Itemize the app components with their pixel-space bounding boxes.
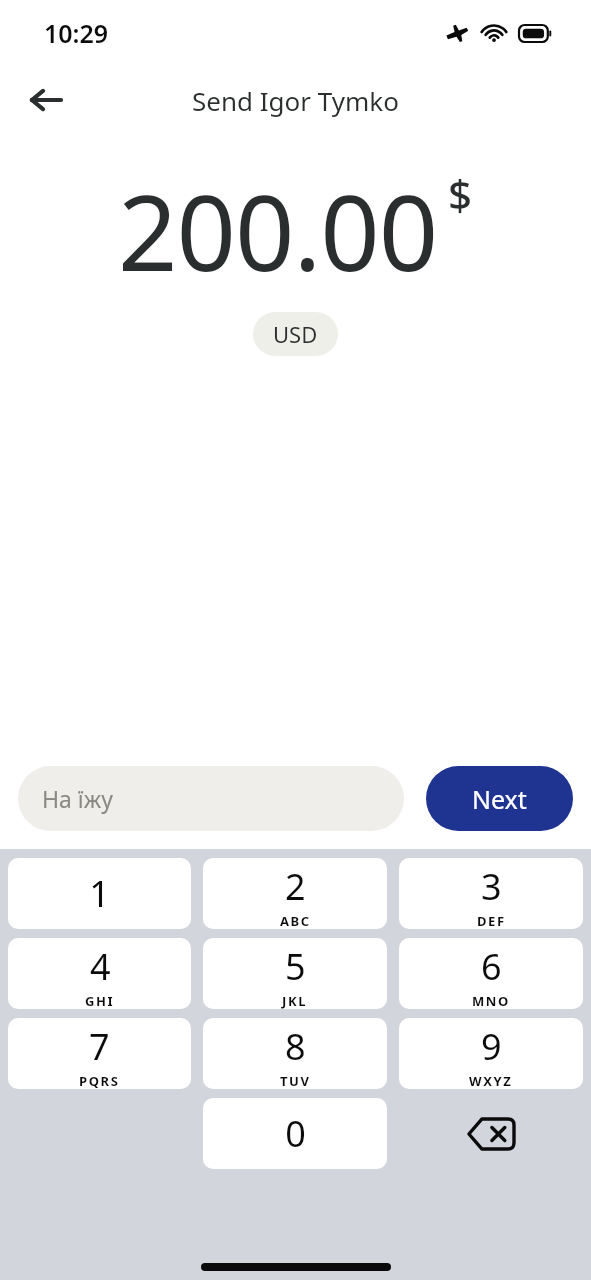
staticText: 5 [285,942,306,991]
staticText: ABC [280,912,311,929]
button[interactable]: 8 [203,1018,387,1089]
staticText: На їжу [42,783,113,814]
button[interactable]: 9 [399,1018,583,1089]
staticText: 3 [481,862,502,911]
button[interactable]: 6 [399,938,583,1009]
staticText: PQRS [79,1072,120,1089]
staticText: 0 [285,1109,306,1158]
staticText: WXYZ [469,1072,513,1089]
staticText: DEF [477,912,506,929]
staticText: 6 [481,942,502,991]
button[interactable]: 2 [203,858,387,929]
button[interactable]: 7 [8,1018,191,1089]
staticText: 9 [481,1022,502,1071]
button[interactable]: 5 [203,938,387,1009]
staticText: 1 [89,869,110,918]
staticText: TUV [280,1072,311,1089]
button[interactable]: 4 [8,938,191,1009]
staticText: USD [273,319,318,349]
button[interactable]: Back [22,76,70,124]
staticText: 4 [90,942,111,991]
staticText: 200.00 [118,160,438,302]
staticText: 2 [285,862,306,911]
button[interactable]: 0 [203,1098,387,1169]
staticText: 7 [89,1022,110,1071]
staticText: MNO [472,992,510,1009]
button[interactable]: Next [426,766,573,831]
staticText: Next [472,782,527,816]
staticText: 10:29 [44,16,109,50]
button[interactable]: USD [253,312,338,356]
staticText: 8 [285,1022,306,1071]
staticText: JKL [282,992,308,1009]
staticText: Send Igor Tymko [192,83,399,118]
button[interactable]: 3 [399,858,583,929]
button[interactable]: На їжу [18,766,404,831]
button[interactable]: Backspace [399,1098,583,1169]
staticText: $ [448,166,473,223]
staticText: GHI [85,992,115,1009]
button[interactable]: 1 [8,858,191,929]
